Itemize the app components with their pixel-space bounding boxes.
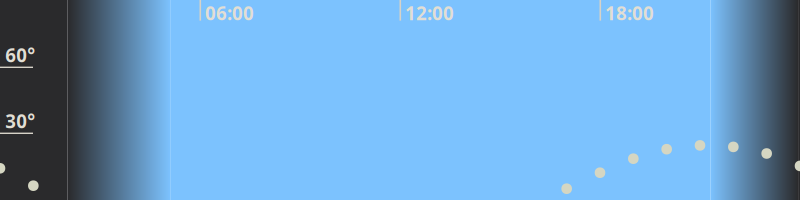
staticText: 60°	[5, 43, 35, 67]
staticText: 12:00	[405, 0, 454, 25]
staticText: 06:00	[205, 0, 254, 25]
staticText: 18:00	[605, 0, 654, 25]
staticText: 30°	[5, 109, 35, 133]
